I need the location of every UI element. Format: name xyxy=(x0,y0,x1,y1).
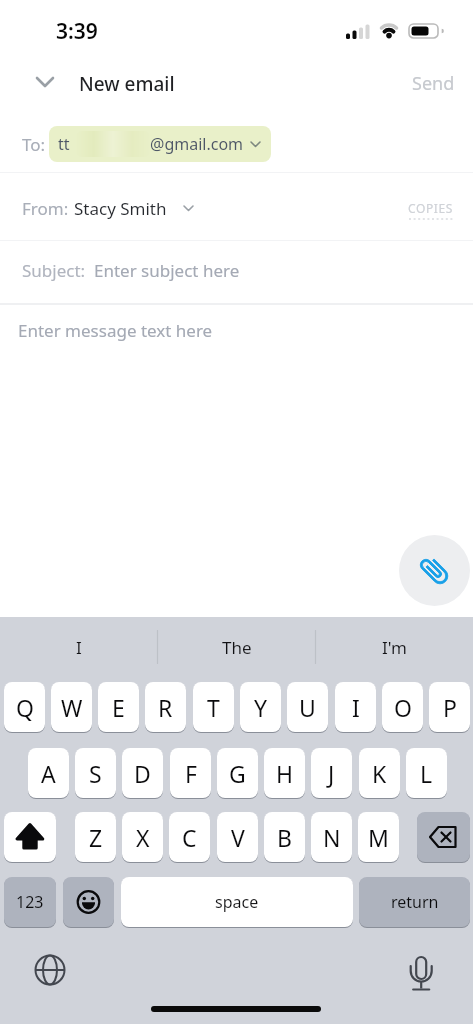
staticText: Z xyxy=(89,822,103,853)
staticText: X xyxy=(136,822,150,853)
staticText: U xyxy=(299,692,316,723)
staticText: The xyxy=(222,636,252,659)
staticText: E xyxy=(112,692,125,723)
button[interactable]: L xyxy=(406,748,447,798)
button[interactable]: X xyxy=(122,812,163,862)
button[interactable]: O xyxy=(382,682,423,732)
staticText: T xyxy=(207,692,220,723)
button[interactable]: The xyxy=(158,617,316,677)
button[interactable]: G xyxy=(217,748,258,798)
button[interactable]: Send xyxy=(395,68,455,98)
button[interactable]: E xyxy=(98,682,139,732)
button[interactable]: I xyxy=(335,682,376,732)
staticText: 3:39 xyxy=(56,17,98,46)
button[interactable]: H xyxy=(264,748,305,798)
button[interactable]: K xyxy=(359,748,400,798)
button[interactable]: T xyxy=(193,682,234,732)
button[interactable]: J xyxy=(311,748,352,798)
button[interactable] xyxy=(417,812,470,862)
staticText: Send xyxy=(412,71,455,96)
button[interactable]: 123 xyxy=(4,877,56,927)
staticText: space xyxy=(215,891,259,913)
staticText: R xyxy=(158,692,173,723)
staticText: L xyxy=(420,758,433,789)
button[interactable]: P xyxy=(429,682,470,732)
button[interactable]: S xyxy=(75,748,116,798)
staticText: P xyxy=(443,692,457,723)
button[interactable] xyxy=(28,68,64,98)
staticText: V xyxy=(231,822,245,853)
button[interactable] xyxy=(4,812,56,862)
button[interactable]: R xyxy=(145,682,186,732)
staticText: F xyxy=(185,758,197,789)
staticText: H xyxy=(276,758,294,789)
staticText: @gmail.com xyxy=(150,133,244,155)
staticText: Q xyxy=(16,692,34,723)
button[interactable]: Z xyxy=(75,812,116,862)
button[interactable]: N xyxy=(311,812,352,862)
button[interactable]: Q xyxy=(4,682,45,732)
staticText: Enter subject here xyxy=(94,259,240,282)
staticText: W xyxy=(61,692,83,723)
button[interactable]: C xyxy=(169,812,210,862)
button[interactable]: tt xyxy=(49,126,271,162)
staticText: COPIES xyxy=(408,200,453,216)
staticText: O xyxy=(394,692,412,723)
staticText: New email xyxy=(79,71,175,97)
button[interactable]: I'm xyxy=(316,617,473,677)
button[interactable] xyxy=(63,877,114,927)
staticText: Subject: xyxy=(22,259,86,282)
button[interactable]: M xyxy=(358,812,399,862)
staticText: I xyxy=(76,636,82,659)
staticText: B xyxy=(277,822,292,853)
button[interactable]: space xyxy=(121,877,353,927)
staticText: Stacy Smith xyxy=(74,197,167,220)
staticText: G xyxy=(229,758,246,789)
staticText: D xyxy=(134,758,151,789)
button[interactable] xyxy=(399,535,470,606)
staticText: 123 xyxy=(16,891,44,913)
staticText: return xyxy=(391,891,439,913)
button[interactable]: W xyxy=(51,682,92,732)
button[interactable]: I xyxy=(0,617,158,677)
staticText: tt xyxy=(58,133,70,155)
staticText: J xyxy=(328,758,335,789)
button[interactable]: B xyxy=(264,812,305,862)
button[interactable]: D xyxy=(122,748,163,798)
button[interactable]: return xyxy=(359,877,470,927)
staticText: K xyxy=(372,758,387,789)
button[interactable]: A xyxy=(28,748,69,798)
button[interactable]: V xyxy=(217,812,258,862)
button[interactable]: Y xyxy=(240,682,281,732)
staticText: A xyxy=(41,758,56,789)
staticText: S xyxy=(89,758,102,789)
staticText: Enter message text here xyxy=(18,319,213,342)
staticText: To: xyxy=(22,133,46,156)
staticText: I'm xyxy=(382,636,407,659)
staticText: N xyxy=(323,822,341,853)
button[interactable]: F xyxy=(170,748,211,798)
staticText: Y xyxy=(254,692,268,723)
staticText: From: xyxy=(22,197,69,220)
staticText: I xyxy=(352,692,360,723)
staticText: C xyxy=(182,822,197,853)
staticText: M xyxy=(368,822,389,853)
button[interactable]: U xyxy=(287,682,328,732)
